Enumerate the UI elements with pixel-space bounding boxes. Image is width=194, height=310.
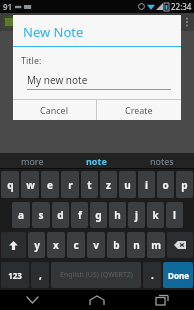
staticText: k (152, 208, 159, 222)
staticText: c (73, 238, 79, 252)
staticText: English (US) (QWERTZ) (60, 270, 133, 280)
staticText: note (86, 155, 107, 167)
button[interactable]: y (28, 232, 45, 258)
staticText: 123 (8, 270, 22, 281)
staticText: a (18, 208, 24, 222)
staticText: p (181, 178, 188, 192)
staticText: y (34, 238, 40, 252)
button[interactable]: g (90, 202, 107, 228)
staticText: tinyNotes (19, 15, 65, 29)
staticText: j (135, 208, 138, 222)
staticText: u (124, 178, 131, 192)
staticText: , (39, 268, 42, 282)
button[interactable]: q (1, 171, 19, 198)
staticText: . (151, 268, 154, 282)
button[interactable]: z (100, 171, 117, 198)
button[interactable]: w (21, 171, 39, 198)
staticText: i (145, 178, 148, 192)
button[interactable]: c (67, 232, 85, 258)
button[interactable]: n (127, 232, 145, 258)
button[interactable]: j (128, 202, 145, 228)
staticText: t (87, 178, 92, 192)
staticText: w (26, 178, 35, 192)
button[interactable]: b (107, 232, 125, 258)
staticText: g (95, 208, 102, 222)
button[interactable]: o (157, 171, 174, 198)
staticText: v (93, 238, 99, 252)
button[interactable]: r (61, 171, 79, 198)
button[interactable]: p (176, 171, 193, 198)
staticText: e (47, 178, 53, 192)
staticText: h (114, 208, 121, 222)
staticText: 91 (3, 1, 13, 12)
button[interactable]: Backspace (167, 232, 193, 258)
staticText: Cancel (40, 104, 69, 116)
staticText: q (7, 178, 14, 192)
button[interactable]: more (0, 153, 64, 168)
staticText: x (53, 238, 59, 252)
button[interactable]: x (47, 232, 65, 258)
button[interactable]: e (41, 171, 59, 198)
button[interactable]: m (147, 232, 165, 258)
button[interactable]: u (119, 171, 136, 198)
button[interactable]: . (143, 262, 161, 288)
staticText: My new note (27, 73, 88, 87)
staticText: r (68, 178, 73, 192)
staticText: d (57, 208, 64, 222)
button[interactable]: Create (97, 100, 181, 120)
staticText: s (38, 208, 44, 222)
button[interactable]: l (166, 202, 183, 228)
button[interactable]: h (109, 202, 126, 228)
button[interactable]: More options (180, 13, 194, 31)
staticText: Create (125, 104, 153, 116)
button[interactable]: t (81, 171, 98, 198)
staticText: m (151, 238, 161, 252)
button[interactable]: New note (156, 13, 180, 31)
button[interactable]: Done (163, 262, 193, 288)
staticText: f (78, 208, 82, 222)
button[interactable]: f (71, 202, 88, 228)
button[interactable]: Recent apps (129, 290, 194, 310)
button[interactable]: s (32, 202, 50, 228)
staticText: New Note (23, 23, 84, 41)
staticText: Title: (21, 54, 42, 66)
button[interactable]: , (31, 262, 49, 288)
button[interactable]: 123 (1, 262, 29, 288)
button[interactable]: i (138, 171, 155, 198)
staticText: l (173, 208, 176, 222)
button[interactable]: Shift (1, 232, 26, 258)
button[interactable]: English (US) (QWERTZ) (51, 262, 141, 288)
staticText: b (113, 238, 120, 252)
staticText: 22:34 (171, 1, 192, 12)
button[interactable]: d (52, 202, 69, 228)
button[interactable]: Refresh (134, 13, 156, 31)
button[interactable]: Cancel (13, 100, 96, 120)
button[interactable]: k (147, 202, 164, 228)
staticText: z (106, 178, 111, 192)
button[interactable]: note (64, 153, 129, 168)
button[interactable]: a (12, 202, 30, 228)
staticText: o (162, 178, 169, 192)
staticText: notes (150, 155, 174, 167)
staticText: n (133, 238, 140, 252)
button[interactable]: v (87, 232, 105, 258)
staticText: Done (168, 270, 189, 281)
button[interactable]: Home (64, 290, 129, 310)
button[interactable]: Hide keyboard (0, 290, 64, 310)
staticText: more (21, 155, 44, 167)
button[interactable]: notes (129, 153, 194, 168)
